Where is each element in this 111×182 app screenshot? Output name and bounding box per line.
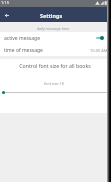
button[interactable]: Back <box>2 10 12 20</box>
button[interactable]: time of message <box>0 44 111 56</box>
button[interactable] <box>0 86 111 99</box>
staticText: font size: 18 <box>0 81 108 86</box>
staticText: Control font size for all books <box>0 62 110 69</box>
staticText: Settings <box>40 12 63 19</box>
button[interactable]: active message <box>0 32 111 44</box>
staticText: 1:15 <box>1 0 9 5</box>
staticText: 10:00 AM <box>90 48 108 53</box>
staticText: active message <box>4 35 40 42</box>
staticText: time of message <box>4 47 43 54</box>
staticText: daily message time <box>0 26 106 31</box>
